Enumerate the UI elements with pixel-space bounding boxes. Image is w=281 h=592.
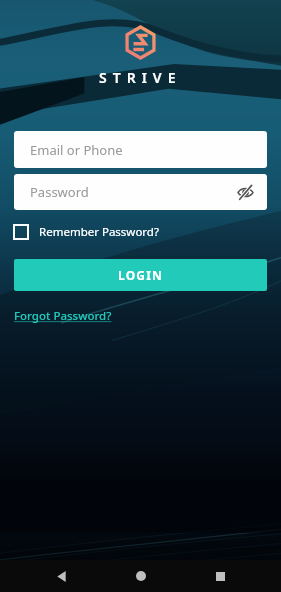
- button[interactable]: Remember Password?: [14, 219, 159, 245]
- staticText: LOGIN: [118, 267, 164, 283]
- staticText: Email or Phone: [30, 141, 123, 159]
- button[interactable]: Forgot Password?: [14, 308, 112, 324]
- button[interactable]: Home: [123, 560, 159, 592]
- button[interactable]: Show password: [231, 178, 259, 206]
- staticText: STRIVE: [99, 68, 182, 87]
- button[interactable]: Password: [14, 174, 267, 210]
- button[interactable]: Back: [43, 560, 79, 592]
- button[interactable]: Recent apps: [202, 560, 238, 592]
- staticText: Forgot Password?: [14, 308, 112, 324]
- button[interactable]: Email or Phone: [14, 131, 267, 168]
- staticText: Remember Password?: [39, 224, 159, 240]
- staticText: Password: [30, 183, 89, 201]
- button[interactable]: LOGIN: [14, 259, 267, 291]
